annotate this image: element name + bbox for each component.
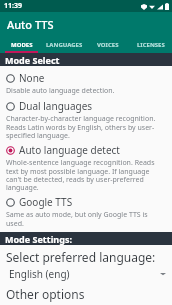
staticText: English (eng) — [9, 267, 160, 281]
button[interactable]: None — [0, 69, 172, 97]
button[interactable]: Dual languages — [0, 97, 172, 141]
button[interactable]: Auto language detect — [0, 141, 172, 193]
button[interactable]: Google TTS — [0, 193, 172, 229]
staticText: Auto language detect — [19, 143, 120, 157]
staticText: LANGUAGES — [46, 41, 83, 49]
staticText: Mode Select — [5, 54, 60, 66]
button[interactable]: VOICES — [86, 37, 129, 53]
staticText: LICENSES — [137, 41, 165, 49]
other: Open language dropdown — [160, 272, 166, 276]
staticText: Google TTS — [19, 195, 73, 209]
staticText: MODES — [11, 41, 33, 49]
staticText: VOICES — [97, 41, 119, 49]
staticText: Disable auto language detection. — [6, 86, 115, 96]
staticText: Same as auto mode, but only Google TTS i… — [6, 210, 166, 228]
staticText: 11:39 — [4, 1, 22, 11]
button[interactable]: LANGUAGES — [43, 37, 86, 53]
button[interactable]: English (eng) — [0, 265, 172, 283]
staticText: None — [19, 71, 45, 85]
staticText: Auto TTS — [7, 17, 54, 32]
button[interactable]: LICENSES — [129, 37, 172, 53]
staticText: Character-by-character language recognit… — [6, 114, 166, 140]
staticText: Mode Settings: — [5, 233, 72, 245]
button[interactable]: MODES — [0, 37, 43, 53]
staticText: Dual languages — [19, 99, 93, 113]
staticText: Select preferred language: — [6, 249, 156, 265]
staticText: Whole-sentence language recognition. Rea… — [6, 158, 166, 192]
staticText: Other options — [6, 286, 85, 302]
